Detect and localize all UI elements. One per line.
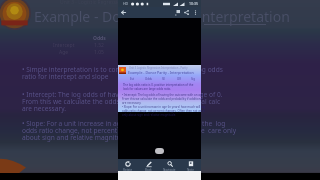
staticText: 1.52 (94, 42, 104, 49)
staticText: Example - Donor Parity - Interpretation (128, 70, 194, 75)
staticText: are necessary. (122, 101, 142, 105)
staticText: Back (145, 168, 152, 171)
staticText: • Intercept: The log odds of having the … (122, 93, 205, 97)
button[interactable]: Note (180, 159, 201, 171)
staticText: Unit 3 - Logistic Regression Interpretat… (60, 0, 158, 6)
staticText: • Intercept: The log odds of having the … (22, 90, 223, 99)
staticText: ratio for intercept and slope (22, 72, 109, 81)
button[interactable]: Share (183, 9, 190, 16)
staticText: Intercept (53, 42, 75, 49)
staticText: odds ratio change, not percent changes. … (122, 109, 205, 113)
staticText: look for values are large odds ratio. (123, 87, 171, 91)
staticText: • Slope: For a unit increase in age (in … (122, 105, 205, 109)
staticText: Sig (191, 77, 195, 81)
staticText: 10:35 (189, 1, 198, 6)
staticText: 1.05 (94, 49, 104, 56)
staticText: Rotate (123, 168, 133, 171)
staticText: Example - Donor Parity - Interpretation (34, 7, 290, 26)
staticText: HD (123, 1, 129, 6)
staticText: SE (162, 77, 166, 81)
staticText: Odds (93, 35, 106, 42)
staticText: OR (177, 77, 181, 81)
button[interactable]: More options (192, 9, 199, 16)
staticText: Odds (145, 77, 152, 81)
staticText: about sign and relative magnitude. (22, 133, 131, 142)
staticText: only about sign and relative magnitude. (122, 113, 177, 117)
staticText: From this we calculate the odds and prob… (22, 97, 221, 106)
button[interactable]: Rotate (118, 159, 138, 171)
button[interactable]: Navigate (159, 159, 180, 171)
staticText: • Simple interpretation is to compute th… (22, 65, 223, 74)
staticText: The log odds ratio is 0. positive interp… (123, 83, 194, 87)
staticText: Est (130, 77, 134, 81)
staticText: are necessary. (22, 104, 67, 113)
staticText: Navigate (163, 168, 176, 171)
staticText: From this we calculate the odds and prob… (122, 97, 205, 101)
staticText: Note (187, 168, 194, 171)
staticText: Unit 3 Logistic Regression Interpretatio… (129, 66, 188, 70)
staticText: Age (59, 49, 69, 56)
staticText: • Slope: For a unit increase in age (in … (22, 119, 226, 128)
staticText: odds ratio change, not percent changes. … (22, 126, 237, 135)
button[interactable]: Cast (174, 9, 181, 16)
button[interactable]: Back (138, 159, 159, 171)
button[interactable]: Back (119, 8, 128, 17)
